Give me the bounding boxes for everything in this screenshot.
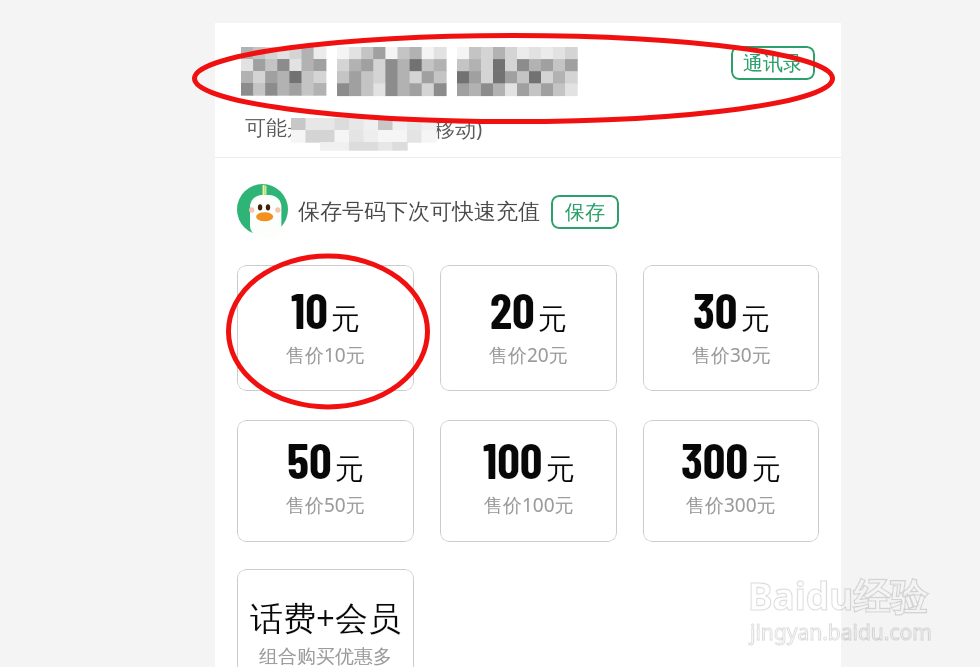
button[interactable]: 100	[440, 420, 617, 542]
staticText: 售价30元	[692, 342, 771, 368]
staticText: 100	[483, 429, 543, 489]
staticText: 50	[287, 429, 332, 489]
staticText: 通讯录	[743, 51, 803, 76]
staticText: 元	[331, 301, 360, 338]
staticText: 元	[538, 301, 567, 338]
staticText: 元	[741, 301, 770, 338]
button[interactable]: 10	[237, 265, 414, 391]
staticText: 售价50元	[286, 492, 365, 518]
staticText: 售价20元	[489, 342, 568, 368]
staticText: 元	[335, 451, 364, 488]
staticText: 话费+会员	[250, 595, 401, 640]
button[interactable]: 20	[440, 265, 617, 391]
staticText: 售价300元	[686, 492, 776, 518]
staticText: 京移动)	[413, 115, 483, 144]
button[interactable]: 保存	[551, 195, 619, 229]
button[interactable]: 50	[237, 420, 414, 542]
staticText: 可能是	[245, 115, 308, 141]
staticText: 300	[681, 429, 749, 489]
staticText: 保存号码下次可快速充值	[298, 198, 540, 226]
staticText: 售价100元	[484, 492, 574, 518]
staticText: 10	[291, 279, 328, 339]
staticText: 组合购买优惠多	[259, 645, 392, 667]
button[interactable]: 通讯录	[731, 46, 815, 80]
other: QQ avatar	[237, 184, 288, 235]
button[interactable]: 话费+会员	[237, 569, 414, 667]
staticText: 元	[752, 451, 781, 488]
staticText: 20	[490, 279, 535, 339]
staticText: 元	[546, 451, 575, 488]
button[interactable]: 30	[643, 265, 819, 391]
staticText: jingyan.baidu.com	[750, 618, 932, 647]
staticText: 保存	[565, 200, 605, 225]
button[interactable]: 300	[643, 420, 819, 542]
staticText: 30	[693, 279, 738, 339]
staticText: Baidu经验	[748, 570, 928, 621]
staticText: 售价10元	[286, 342, 365, 368]
